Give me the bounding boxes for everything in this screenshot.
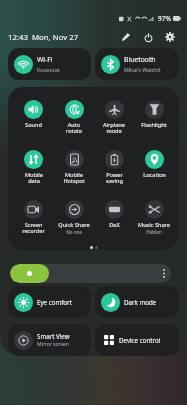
staticText: Hidden bbox=[146, 229, 162, 235]
staticText: Smart View bbox=[37, 332, 70, 340]
staticText: Power saving bbox=[106, 171, 123, 185]
button[interactable]: Device control bbox=[95, 324, 179, 356]
staticText: Dark mode bbox=[124, 298, 157, 306]
button[interactable]: Quick Share bbox=[54, 200, 94, 250]
staticText: Location bbox=[143, 171, 166, 179]
button[interactable]: Music Share bbox=[134, 200, 174, 250]
button[interactable]: Power saving bbox=[94, 150, 134, 200]
staticText: Quick Share bbox=[58, 221, 90, 229]
button[interactable]: Edit quick settings bbox=[118, 29, 134, 45]
button[interactable]: More brightness options bbox=[156, 264, 171, 283]
staticText: Mobile Hotspot bbox=[63, 171, 85, 185]
button[interactable]: Airplane mode bbox=[94, 100, 134, 150]
staticText: Mihai's Watch6 bbox=[124, 66, 161, 73]
staticText: 97% bbox=[158, 14, 171, 23]
staticText: Device control bbox=[119, 336, 161, 344]
button[interactable]: Power off bbox=[140, 29, 156, 45]
button[interactable]: Location bbox=[134, 150, 174, 200]
button[interactable]: Wi-Fi bbox=[8, 48, 91, 80]
button[interactable]: Smart View bbox=[8, 324, 91, 356]
staticText: Airplane mode bbox=[103, 121, 125, 135]
button[interactable]: Flashlight bbox=[134, 100, 174, 150]
staticText: Kuoeocat bbox=[37, 66, 60, 73]
staticText: Mirror screen bbox=[37, 341, 69, 348]
staticText: Flashlight bbox=[141, 121, 167, 129]
button[interactable]: Mobile Hotspot bbox=[54, 150, 94, 200]
staticText: Sound bbox=[25, 121, 42, 129]
button[interactable]: Mobile data bbox=[13, 150, 54, 200]
staticText: Screen recorder bbox=[22, 221, 45, 235]
staticText: DeX bbox=[109, 221, 120, 229]
button[interactable]: Sound bbox=[13, 100, 54, 150]
button[interactable]: More brightness options bbox=[10, 264, 171, 283]
staticText: Wi-Fi bbox=[37, 55, 53, 64]
button[interactable]: Settings bbox=[162, 29, 178, 45]
button[interactable]: Screen recorder bbox=[13, 200, 54, 250]
staticText: Bluetooth bbox=[124, 55, 156, 64]
button[interactable]: Bluetooth bbox=[95, 48, 179, 80]
staticText: Mobile data bbox=[25, 171, 43, 185]
staticText: 12:43 bbox=[8, 32, 28, 43]
button[interactable]: Eye comfort shield bbox=[8, 286, 91, 318]
button[interactable]: DeX bbox=[94, 200, 134, 250]
staticText: Mon, Nov 27 bbox=[32, 32, 79, 43]
staticText: No one bbox=[66, 229, 82, 235]
button[interactable]: Dark mode bbox=[95, 286, 179, 318]
staticText: Music Share bbox=[138, 221, 170, 229]
button[interactable]: Auto rotate bbox=[54, 100, 94, 150]
staticText: Auto rotate bbox=[66, 121, 82, 135]
staticText: Eye comfort shield bbox=[37, 298, 89, 306]
